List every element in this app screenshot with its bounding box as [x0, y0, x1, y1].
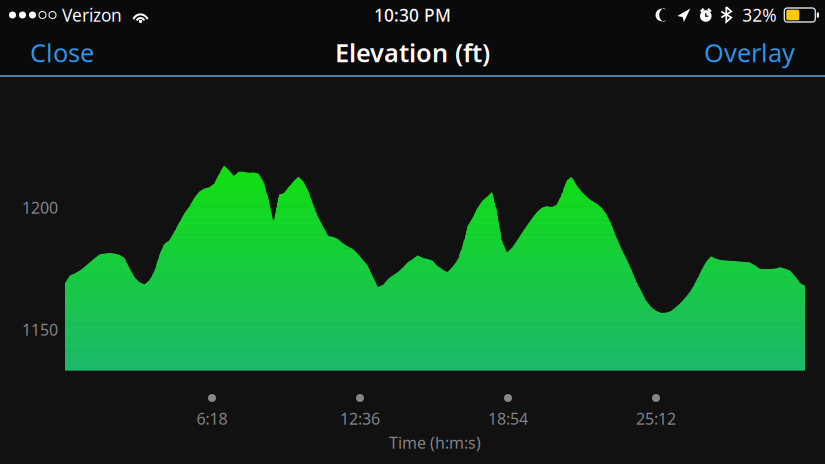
staticText: Elevation (ft) [335, 36, 490, 69]
staticText: Verizon [62, 3, 122, 26]
staticText: 1150 [22, 319, 58, 340]
staticText: 25:12 [636, 408, 676, 429]
staticText: Close [30, 36, 94, 69]
staticText: Time (h:m:s) [389, 432, 481, 453]
staticText: 10:30 PM [374, 3, 451, 26]
staticText: Overlay [704, 36, 795, 69]
button[interactable]: Overlay [692, 30, 807, 75]
button[interactable]: Close [18, 30, 106, 75]
staticText: 18:54 [488, 408, 528, 429]
staticText: 12:36 [340, 408, 380, 429]
staticText: 32% [742, 3, 776, 26]
staticText: 6:18 [196, 408, 227, 429]
staticText: 1200 [22, 197, 58, 218]
